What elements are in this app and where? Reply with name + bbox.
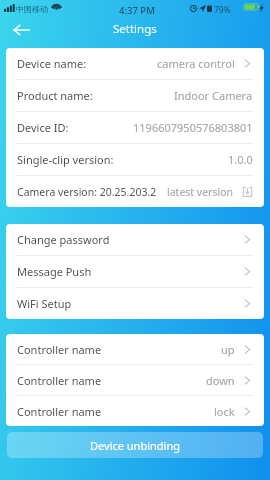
staticText: down: [206, 373, 235, 388]
button[interactable]: Back: [7, 19, 35, 41]
staticText: Device ID:: [17, 120, 69, 135]
staticText: Controller name: [17, 373, 102, 388]
button[interactable]: WiFi Setup: [6, 288, 264, 319]
button[interactable]: Camera version: 20.25.203.2: [6, 176, 264, 207]
button[interactable]: Single-clip version:: [6, 144, 264, 175]
button[interactable]: Product name:: [6, 80, 264, 111]
staticText: Product name:: [17, 88, 93, 103]
staticText: Device unbinding: [90, 438, 180, 453]
staticText: Indoor Camera: [174, 88, 253, 103]
button[interactable]: Controller name: [6, 365, 264, 395]
staticText: 中国移动: [16, 4, 48, 14]
staticText: 1.0.0: [228, 152, 253, 167]
button[interactable]: Device ID:: [6, 112, 264, 143]
staticText: WiFi Setup: [17, 296, 72, 311]
button[interactable]: Device unbinding: [7, 432, 263, 458]
staticText: Camera version: 20.25.203.2: [17, 185, 157, 199]
button[interactable]: Controller name: [6, 334, 264, 364]
staticText: 4:37 PM: [119, 4, 155, 17]
staticText: Single-clip version:: [17, 152, 114, 167]
button[interactable]: Message Push: [6, 256, 264, 287]
staticText: Message Push: [17, 264, 92, 279]
staticText: Controller name: [17, 404, 102, 419]
staticText: 1196607950576803801: [133, 120, 253, 135]
button[interactable]: Change password: [6, 224, 264, 255]
staticText: Device name:: [17, 56, 87, 71]
staticText: latest version: [167, 185, 234, 199]
staticText: Settings: [113, 21, 157, 37]
button[interactable]: Controller name: [6, 396, 264, 426]
staticText: lock: [214, 404, 235, 419]
staticText: 79%: [214, 4, 231, 16]
staticText: camera control: [157, 56, 235, 71]
staticText: Controller name: [17, 342, 102, 357]
staticText: Change password: [17, 232, 110, 247]
staticText: up: [221, 342, 235, 357]
button[interactable]: Device name:: [6, 48, 264, 79]
